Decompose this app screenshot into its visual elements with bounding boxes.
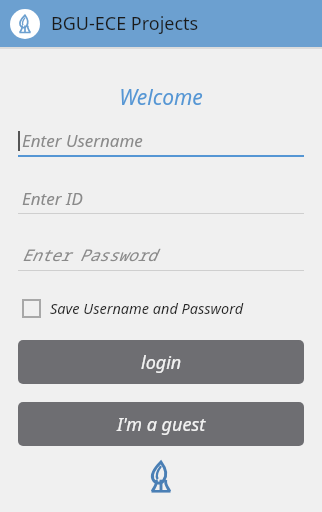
button[interactable]: Save Username and Password xyxy=(23,298,304,318)
staticText: Enter Username xyxy=(22,129,143,152)
button[interactable]: Enter Username xyxy=(18,125,304,157)
staticText: Welcome xyxy=(18,83,304,112)
staticText: Enter Password xyxy=(22,244,157,266)
staticText: I'm a guest xyxy=(117,412,206,437)
button[interactable]: App logo xyxy=(10,9,40,39)
staticText: Save Username and Password xyxy=(50,298,244,318)
button[interactable]: login xyxy=(18,340,304,384)
staticText: Enter ID xyxy=(22,187,83,210)
staticText: login xyxy=(141,350,182,375)
button[interactable]: Enter ID xyxy=(18,183,304,214)
staticText: BGU-ECE Projects xyxy=(51,11,199,36)
button[interactable]: I'm a guest xyxy=(18,402,304,446)
button[interactable]: Enter Password xyxy=(18,240,304,271)
